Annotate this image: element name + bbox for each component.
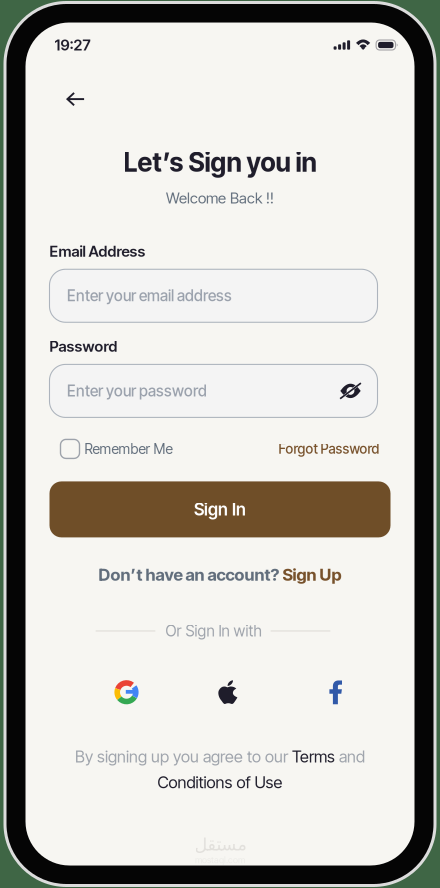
button[interactable]: Show password (331, 382, 361, 399)
staticText: Terms (292, 747, 335, 766)
button[interactable]: Sign In (49, 481, 390, 537)
staticText: Sign In (194, 499, 246, 520)
staticText: مستقل (194, 834, 246, 855)
staticText: Forgot Password (278, 441, 379, 457)
staticText: Enter your email address (67, 286, 232, 305)
staticText: Welcome Back !! (166, 189, 274, 207)
staticText: and (335, 747, 365, 766)
staticText: Or Sign In with (165, 622, 261, 640)
button[interactable]: Back (59, 83, 91, 114)
staticText: Password (49, 337, 117, 355)
staticText: By signing up you agree to our (75, 747, 292, 766)
button[interactable]: Sign Up (282, 564, 341, 585)
button[interactable]: Remember Me (60, 439, 172, 458)
staticText: 19:27 (54, 36, 90, 54)
staticText: Don’t have an account? (98, 564, 282, 585)
staticText: Conditions of Use (157, 772, 282, 792)
button[interactable]: Sign in with Google (90, 673, 162, 711)
staticText: mostaql.com (195, 855, 245, 865)
button[interactable]: Forgot Password (278, 441, 379, 457)
staticText: Sign Up (282, 564, 341, 585)
button[interactable]: Sign in with Apple (191, 673, 263, 711)
staticText: Enter your password (67, 382, 207, 400)
button[interactable]: Sign in with Facebook (299, 673, 371, 711)
staticText: Let’s Sign you in (123, 146, 316, 178)
staticText: Remember Me (84, 440, 172, 457)
staticText: Email Address (49, 242, 145, 260)
